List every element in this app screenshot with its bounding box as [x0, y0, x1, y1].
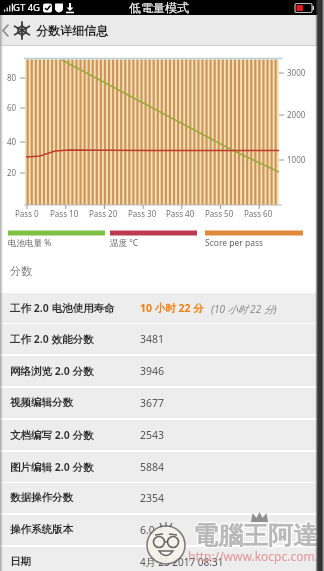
- staticText: 電腦王阿達: [193, 521, 318, 552]
- staticText: 60: [7, 102, 17, 113]
- staticText: 分数: [10, 264, 32, 278]
- staticText: 温度 °C: [110, 237, 139, 249]
- button[interactable]: 网络浏览 2.0 分数: [0, 356, 324, 386]
- staticText: 文档编写 2.0 分数: [10, 428, 94, 442]
- button[interactable]: 数据操作分数: [0, 483, 324, 513]
- staticText: 6.0.1: [140, 523, 164, 537]
- staticText: 低電量模式: [129, 0, 189, 15]
- button[interactable]: 文档编写 2.0 分数: [0, 420, 324, 450]
- staticText: 数据操作分数: [10, 491, 73, 504]
- staticText: 80: [7, 72, 17, 83]
- button[interactable]: 视频编辑分数: [0, 388, 324, 418]
- button[interactable]: 图片编辑 2.0 分数: [0, 452, 324, 482]
- staticText: 電腦王阿達: [193, 520, 318, 551]
- staticText: 4月 25 2017 08:31: [140, 555, 224, 569]
- staticText: 20: [7, 167, 17, 178]
- button[interactable]: 分数详细信息: [0, 15, 324, 46]
- staticText: 2000: [287, 109, 306, 120]
- staticText: 1000: [287, 154, 306, 165]
- staticText: 3677: [140, 396, 165, 410]
- staticText: 3481: [140, 332, 165, 346]
- staticText: 10 小时 22 分: [140, 301, 204, 315]
- staticText: 工作 2.0 电池使用寿命: [10, 301, 115, 315]
- staticText: 40: [7, 136, 17, 147]
- staticText: 3000: [287, 67, 306, 78]
- staticText: 网络浏览 2.0 分数: [10, 364, 94, 378]
- staticText: 2354: [140, 491, 165, 505]
- staticText: 電腦王阿達: [194, 519, 319, 550]
- staticText: Score per pass: [205, 237, 264, 249]
- staticText: 图片编辑 2.0 分数: [10, 460, 94, 474]
- staticText: 工作 2.0 效能分数: [10, 332, 94, 346]
- staticText: http://www.kocpc.com.tw: [188, 548, 324, 564]
- staticText: 電腦王阿達: [192, 521, 317, 552]
- staticText: Pass 50: [205, 208, 234, 219]
- button[interactable]: 日期: [0, 547, 324, 571]
- staticText: 電腦王阿達: [192, 520, 317, 551]
- staticText: 视频编辑分数: [10, 396, 73, 409]
- staticText: Pass 60: [244, 208, 273, 219]
- staticText: 電腦王阿達: [194, 520, 319, 551]
- staticText: 3946: [140, 364, 165, 378]
- staticText: 操作系统版本: [10, 523, 73, 536]
- staticText: 電腦王阿達: [192, 519, 317, 550]
- staticText: 5884: [140, 460, 165, 474]
- staticText: GT 4G: [13, 1, 41, 14]
- staticText: 电池电量 %: [8, 237, 52, 249]
- button[interactable]: 操作系统版本: [0, 515, 324, 545]
- staticText: 2543: [140, 428, 165, 442]
- staticText: Pass 20: [89, 208, 118, 219]
- staticText: Pass 40: [166, 208, 195, 219]
- staticText: 日期: [10, 555, 31, 568]
- button[interactable]: 工作 2.0 电池使用寿命: [0, 293, 324, 323]
- staticText: 分数详细信息: [36, 23, 108, 38]
- staticText: Pass 10: [50, 208, 79, 219]
- button[interactable]: 工作 2.0 效能分数: [0, 324, 324, 354]
- staticText: Pass 30: [128, 208, 157, 219]
- staticText: (10 小时 22 分): [211, 302, 277, 316]
- staticText: 電腦王阿達: [193, 519, 318, 550]
- staticText: 電腦王阿達: [194, 521, 319, 552]
- staticText: Pass 0: [15, 208, 39, 219]
